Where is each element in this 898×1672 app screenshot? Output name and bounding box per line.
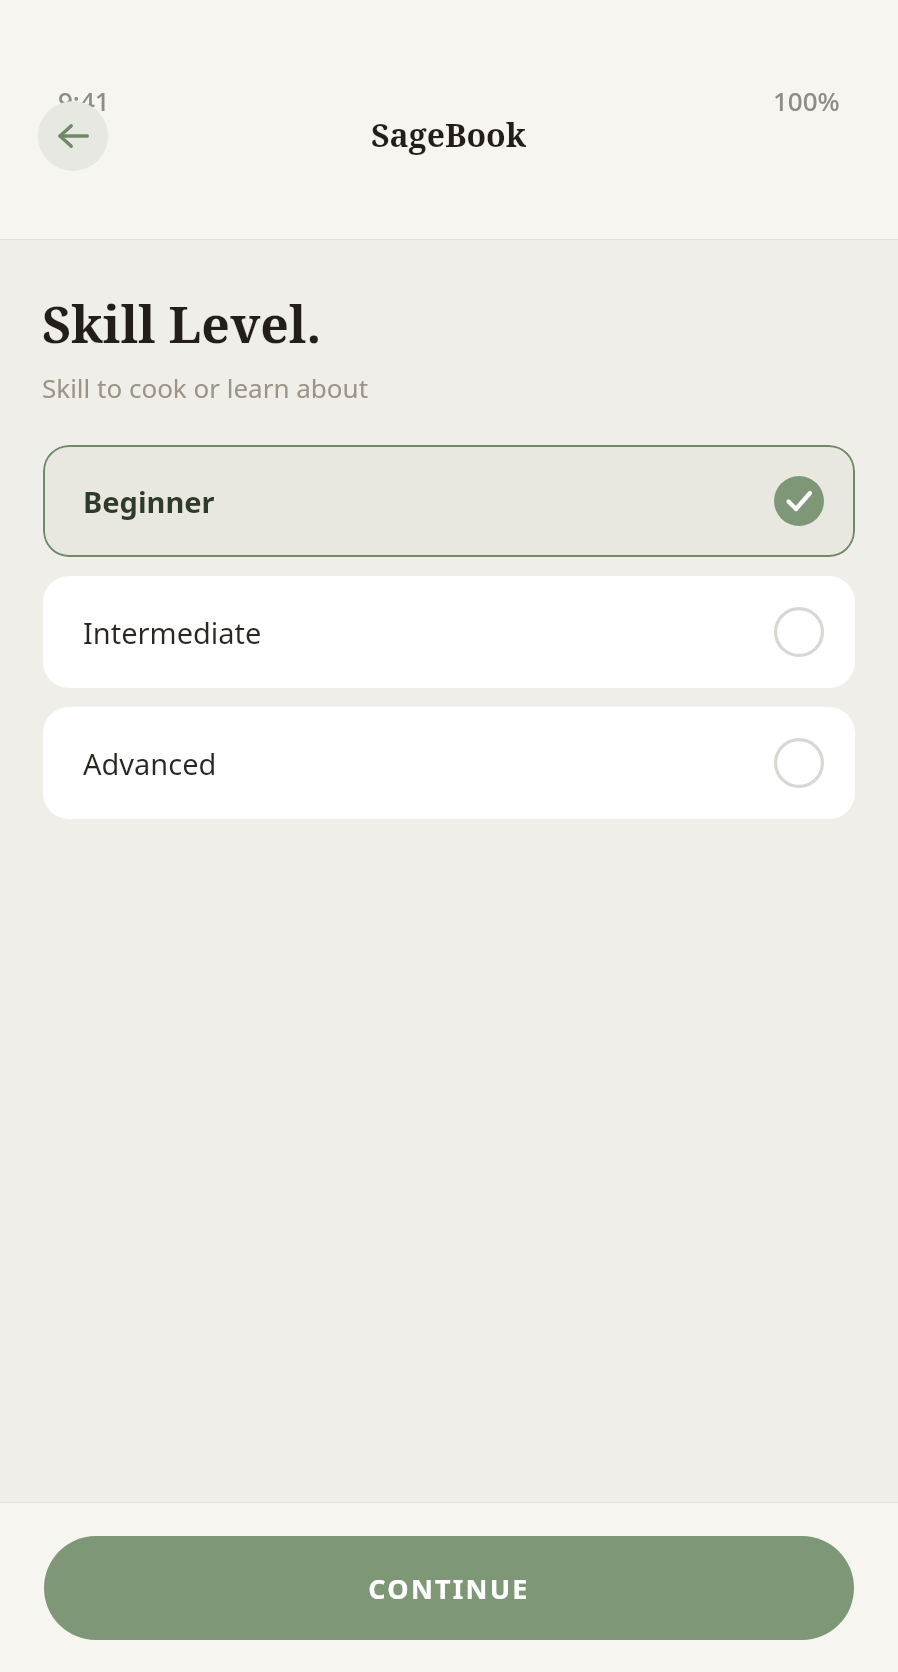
button[interactable]: Beginner — [43, 445, 855, 557]
button[interactable]: Intermediate — [43, 576, 855, 688]
staticText: SageBook — [371, 113, 527, 157]
staticText: CONTINUE — [368, 1570, 530, 1607]
staticText: Beginner — [83, 482, 215, 521]
staticText: Intermediate — [83, 613, 262, 652]
staticText: Advanced — [83, 744, 217, 783]
button[interactable]: Back — [38, 101, 108, 171]
staticText: Skill to cook or learn about — [42, 370, 369, 405]
staticText: 9:41 — [58, 83, 110, 118]
staticText: Skill Level. — [42, 290, 322, 358]
button[interactable]: CONTINUE — [44, 1536, 854, 1640]
staticText: 100% — [773, 83, 840, 118]
button[interactable]: Advanced — [43, 707, 855, 819]
